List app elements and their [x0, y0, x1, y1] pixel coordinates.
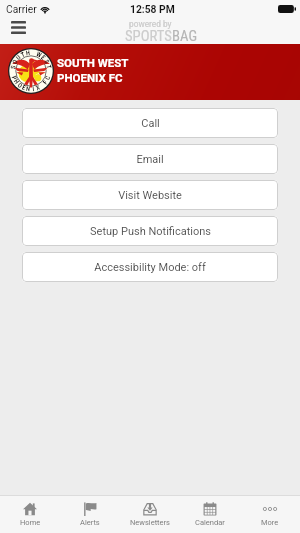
staticText: PHOENIX FC: [57, 71, 123, 84]
staticText: Carrier: [6, 3, 37, 15]
button[interactable]: More: [240, 496, 300, 533]
button[interactable]: Accessibility Mode: off: [22, 252, 278, 282]
staticText: Visit Website: [118, 189, 182, 202]
staticText: Newsletters: [130, 518, 170, 527]
button[interactable]: Calendar: [180, 496, 240, 533]
button[interactable]: Alerts: [60, 496, 120, 533]
staticText: Home: [20, 518, 41, 527]
button[interactable]: Call: [22, 108, 278, 138]
button[interactable]: Email: [22, 144, 278, 174]
staticText: BAG: [172, 27, 198, 44]
staticText: Calendar: [195, 518, 225, 527]
staticText: Email: [136, 153, 164, 166]
staticText: Setup Push Notifications: [90, 225, 211, 238]
button[interactable]: Home: [0, 496, 60, 533]
staticText: More: [261, 518, 279, 527]
staticText: SOUTH WEST: [57, 56, 129, 69]
button[interactable]: Menu: [6, 17, 31, 37]
staticText: SPORTS: [125, 27, 172, 44]
staticText: Call: [141, 117, 160, 130]
button[interactable]: Newsletters: [120, 496, 180, 533]
staticText: 12:58 PM: [130, 3, 175, 15]
staticText: Accessibility Mode: off: [94, 261, 206, 274]
button[interactable]: Setup Push Notifications: [22, 216, 278, 246]
staticText: Alerts: [80, 518, 100, 527]
staticText: powered by: [129, 19, 172, 29]
button[interactable]: Visit Website: [22, 180, 278, 210]
